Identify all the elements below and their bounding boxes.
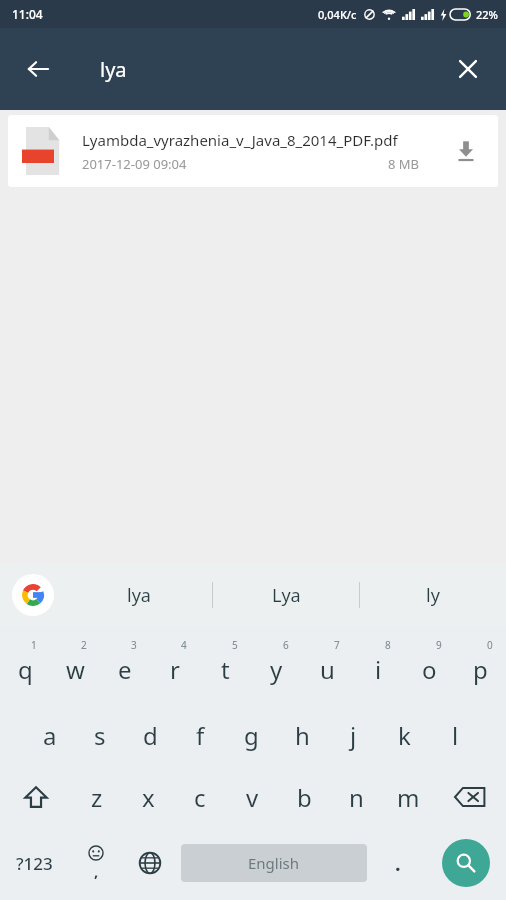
staticText: Lyambda_vyrazhenia_v_Java_8_2014_PDF.pdf	[82, 130, 398, 150]
staticText: 4	[181, 638, 187, 652]
button[interactable]: Clear	[444, 45, 492, 93]
button[interactable]: lya	[100, 56, 426, 83]
staticText: English	[248, 853, 300, 873]
staticText: w	[66, 653, 85, 686]
button[interactable]: 0	[455, 632, 506, 698]
staticText: 6	[283, 638, 289, 652]
button[interactable]: k	[379, 698, 430, 764]
button[interactable]: lya	[66, 564, 212, 626]
staticText: r	[170, 653, 180, 686]
staticText: s	[94, 719, 106, 752]
button[interactable]: d	[125, 698, 175, 764]
staticText: f	[196, 719, 205, 752]
staticText: 5	[232, 638, 238, 652]
button[interactable]: 8	[353, 632, 404, 698]
staticText: 7	[334, 638, 340, 652]
button[interactable]: 9	[404, 632, 455, 698]
button[interactable]: c	[174, 764, 226, 830]
staticText: lya	[100, 56, 127, 83]
button[interactable]: 1	[0, 632, 50, 698]
staticText: 11:04	[12, 6, 43, 22]
button[interactable]: h	[277, 698, 328, 764]
staticText: 22%	[476, 7, 498, 22]
staticText: 2017-12-09 09:04	[82, 155, 187, 173]
button[interactable]: Change language	[123, 830, 177, 896]
staticText: y	[270, 653, 283, 686]
staticText: 0	[487, 638, 493, 652]
button[interactable]: s	[75, 698, 125, 764]
staticText: ?123	[16, 852, 53, 875]
staticText: Lya	[272, 583, 301, 608]
staticText: t	[221, 653, 230, 686]
staticText: b	[297, 781, 312, 814]
button[interactable]: Emoji	[69, 830, 123, 896]
button[interactable]: ly	[360, 564, 506, 626]
button[interactable]: 4	[150, 632, 200, 698]
staticText: i	[375, 653, 382, 686]
staticText: 2	[81, 638, 87, 652]
staticText: d	[143, 719, 158, 752]
staticText: g	[244, 719, 259, 752]
staticText: h	[295, 719, 310, 752]
button[interactable]: g	[226, 698, 277, 764]
staticText: m	[397, 781, 420, 814]
button[interactable]: Google	[12, 574, 54, 616]
staticText: 3	[131, 638, 137, 652]
staticText: c	[194, 781, 206, 814]
staticText: z	[91, 781, 103, 814]
staticText: 1	[31, 638, 37, 652]
button[interactable]: m	[382, 764, 434, 830]
button[interactable]: Backspace	[434, 764, 506, 830]
button[interactable]: b	[278, 764, 330, 830]
staticText: o	[422, 653, 437, 686]
button[interactable]: l	[430, 698, 481, 764]
staticText: q	[18, 653, 33, 686]
button[interactable]: 5	[200, 632, 251, 698]
button[interactable]: v	[226, 764, 278, 830]
staticText: 8 MB	[388, 155, 420, 173]
button[interactable]: 3	[100, 632, 150, 698]
button[interactable]: 7	[302, 632, 353, 698]
staticText: a	[43, 719, 57, 752]
staticText: v	[246, 781, 259, 814]
button[interactable]: 6	[251, 632, 302, 698]
button[interactable]: n	[330, 764, 382, 830]
staticText: ly	[426, 583, 440, 608]
button[interactable]: .	[371, 830, 425, 896]
staticText: 9	[436, 638, 442, 652]
button[interactable]: ?123	[0, 830, 69, 896]
button[interactable]: English	[181, 844, 367, 882]
button[interactable]: Shift	[0, 764, 71, 830]
button[interactable]: Search	[442, 839, 490, 887]
staticText: k	[398, 719, 411, 752]
button[interactable]: Lya	[213, 564, 359, 626]
button[interactable]: j	[328, 698, 379, 764]
staticText: x	[142, 781, 155, 814]
staticText: j	[350, 719, 357, 752]
button[interactable]: f	[175, 698, 226, 764]
button[interactable]: z	[71, 764, 122, 830]
staticText: ,	[94, 861, 99, 881]
staticText: u	[320, 653, 335, 686]
button[interactable]: a	[25, 698, 75, 764]
staticText: p	[473, 653, 488, 686]
staticText: .	[395, 850, 401, 877]
button[interactable]: 2	[50, 632, 100, 698]
button[interactable]: x	[122, 764, 174, 830]
button[interactable]: Back	[14, 45, 62, 93]
button[interactable]: Download	[446, 131, 486, 171]
staticText: l	[452, 719, 459, 752]
staticText: 8	[385, 638, 391, 652]
staticText: 0,04K/c	[318, 7, 357, 22]
button[interactable]: Lyambda_vyrazhenia_v_Java_8_2014_PDF.pdf	[8, 115, 498, 187]
staticText: n	[349, 781, 364, 814]
staticText: lya	[127, 583, 151, 608]
staticText: e	[118, 653, 132, 686]
